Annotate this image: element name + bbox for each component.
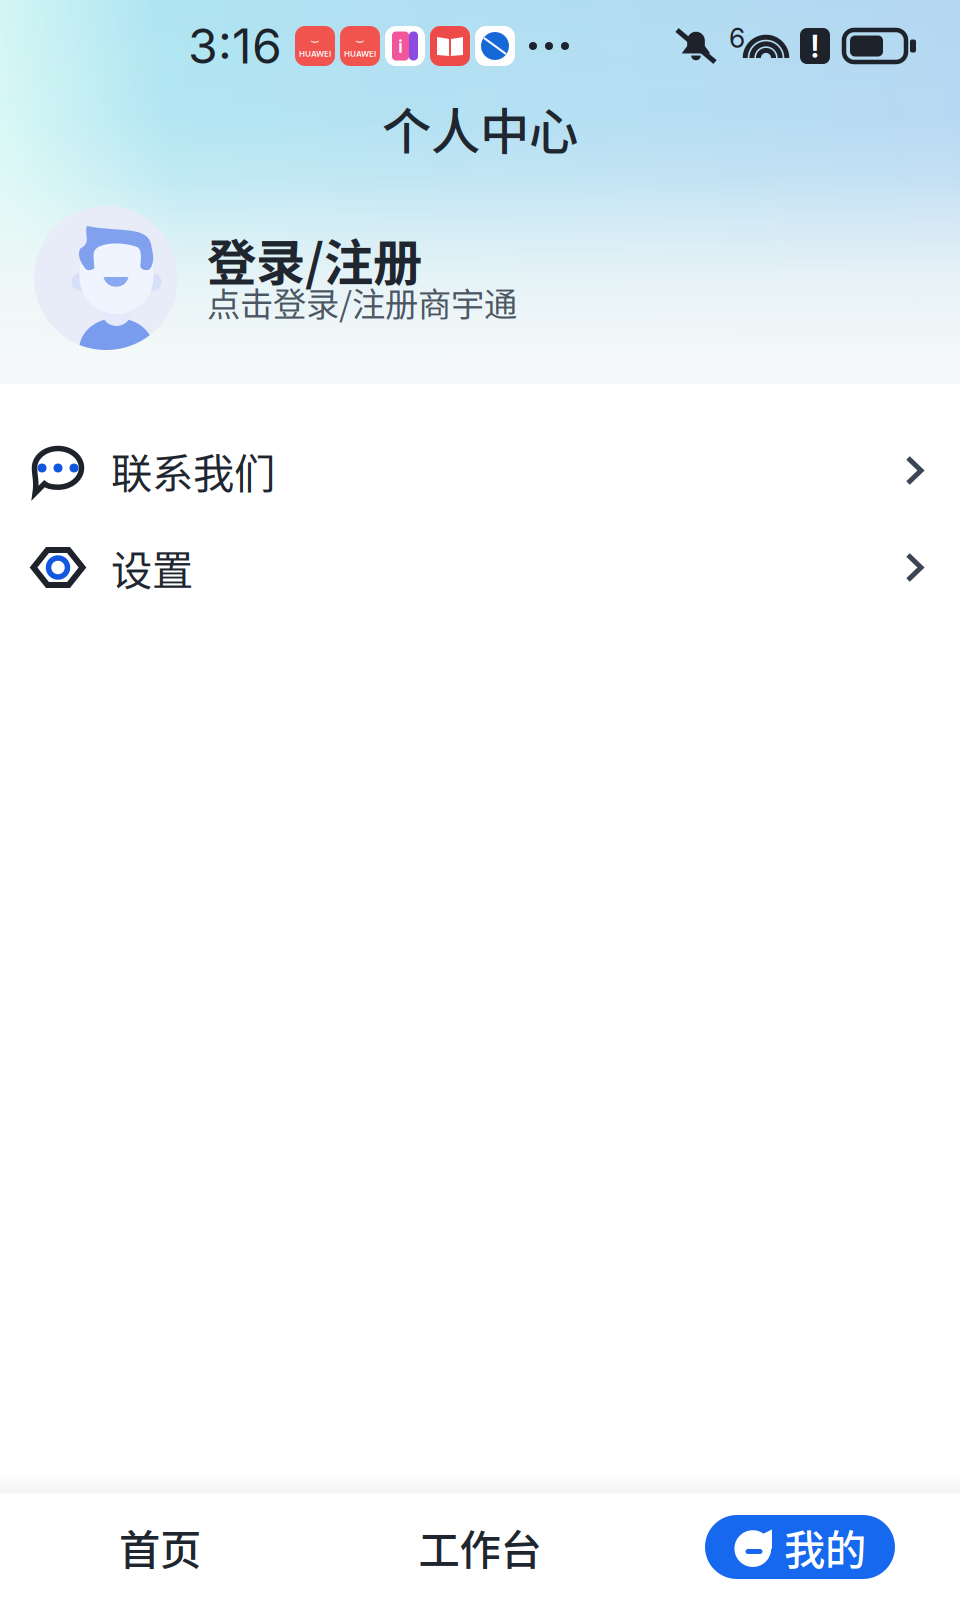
button[interactable]: 设置: [0, 519, 960, 616]
button[interactable]: 登录/注册: [0, 164, 960, 350]
button[interactable]: 我的: [705, 1515, 895, 1579]
button[interactable]: 联系我们: [0, 422, 960, 519]
staticText: ⌣: [310, 33, 320, 48]
staticText: i: [398, 35, 403, 57]
staticText: HUAWEI: [344, 49, 376, 59]
staticText: 个人中心: [382, 92, 578, 164]
button[interactable]: 首页: [0, 1494, 320, 1600]
staticText: 6: [729, 22, 745, 54]
staticText: 联系我们: [111, 441, 275, 500]
staticText: ⌣: [355, 33, 365, 48]
staticText: 登录/注册: [207, 223, 422, 295]
staticText: HUAWEI: [299, 49, 331, 59]
staticText: !: [810, 27, 819, 65]
staticText: 3:16: [188, 17, 282, 75]
staticText: 工作台: [418, 1517, 541, 1577]
staticText: 首页: [119, 1517, 201, 1577]
staticText: 设置: [111, 538, 193, 597]
staticText: 我的: [784, 1517, 866, 1577]
staticText: 点击登录/注册商宇通: [207, 278, 517, 326]
button[interactable]: 工作台: [320, 1494, 640, 1600]
